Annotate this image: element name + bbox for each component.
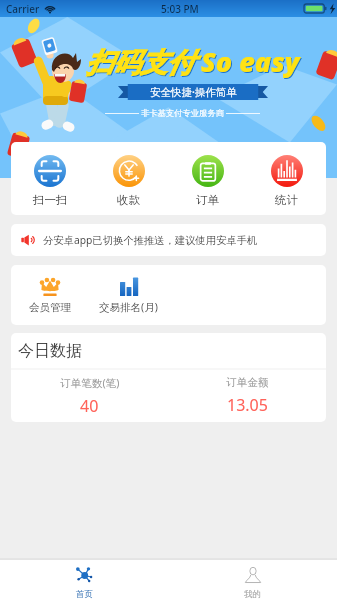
staticText: 交易排名(月): [99, 300, 158, 314]
button[interactable]: 分安卓app已切换个推推送，建议使用安卓手机: [11, 224, 326, 256]
staticText: 收款: [117, 193, 140, 207]
staticText: 非卡基支付专业服务商: [141, 108, 224, 118]
staticText: 13.05: [227, 394, 268, 416]
button[interactable]: 订单: [168, 142, 247, 215]
staticText: 扫一扫: [33, 193, 68, 207]
button[interactable]: 扫一扫: [11, 142, 89, 215]
staticText: Carrier: [6, 2, 40, 16]
staticText: 扫码支付 So easy: [86, 43, 300, 80]
staticText: 订单金额: [226, 376, 269, 389]
staticText: 40: [80, 395, 99, 417]
staticText: 订单笔数(笔): [60, 376, 120, 390]
staticText: 统计: [275, 193, 298, 207]
staticText: 订单: [196, 193, 219, 207]
staticText: 今日数据: [18, 341, 82, 361]
staticText: 我的: [244, 589, 261, 600]
staticText: 会员管理: [29, 301, 71, 314]
staticText: 首页: [76, 589, 93, 600]
button[interactable]: 会员管理: [11, 265, 89, 325]
button[interactable]: 我的: [168, 567, 337, 600]
staticText: 分安卓app已切换个推推送，建议使用安卓手机: [43, 233, 258, 247]
button[interactable]: 统计: [247, 142, 326, 215]
button[interactable]: 首页: [0, 567, 168, 600]
button[interactable]: 收款: [89, 142, 168, 215]
staticText: 扫码支付 So easy: [87, 44, 301, 81]
staticText: 安全快捷·操作简单: [150, 85, 237, 99]
staticText: 5:03 PM: [161, 2, 199, 16]
button[interactable]: 交易排名(月): [89, 265, 168, 325]
